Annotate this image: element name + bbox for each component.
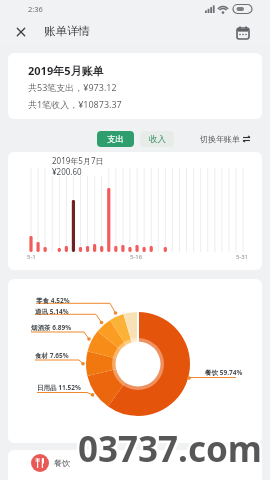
staticText: 餐饮 bbox=[54, 458, 70, 468]
button[interactable] bbox=[8, 450, 262, 480]
staticText: 03737.com bbox=[78, 425, 262, 473]
staticText: 账单详情 bbox=[44, 24, 90, 38]
button[interactable] bbox=[234, 24, 252, 42]
staticText: 2019年5月账单 bbox=[28, 63, 104, 78]
button[interactable]: 支出 bbox=[97, 131, 134, 147]
button[interactable]: 切换年账单 bbox=[200, 131, 252, 147]
staticText: 共1笔收入，¥10873.37 bbox=[28, 98, 122, 110]
staticText: ¥200.60 bbox=[52, 166, 82, 177]
staticText: 切换年账单 bbox=[200, 134, 240, 144]
staticText: 日用品 11.52% bbox=[37, 383, 81, 392]
staticText: 支出 bbox=[107, 134, 124, 145]
staticText: 5-16 bbox=[130, 253, 143, 261]
button[interactable]: 收入 bbox=[140, 131, 174, 147]
staticText: 烟酒茶 6.89% bbox=[31, 323, 72, 332]
staticText: 餐饮 59.74% bbox=[205, 368, 243, 377]
staticText: 2019年5月7日 bbox=[52, 155, 104, 166]
staticText: 通讯 5.14% bbox=[35, 307, 69, 316]
staticText: 2:36 bbox=[28, 4, 43, 14]
staticText: 收入 bbox=[149, 134, 166, 145]
staticText: 共53笔支出，¥973.12 bbox=[28, 81, 117, 93]
staticText: 零食 4.52% bbox=[36, 296, 70, 305]
staticText: 5-1 bbox=[27, 253, 36, 261]
button[interactable] bbox=[10, 21, 32, 43]
staticText: 5-31 bbox=[236, 253, 249, 261]
staticText: 03737.com bbox=[78, 425, 262, 473]
staticText: 食材 7.65% bbox=[35, 351, 69, 360]
